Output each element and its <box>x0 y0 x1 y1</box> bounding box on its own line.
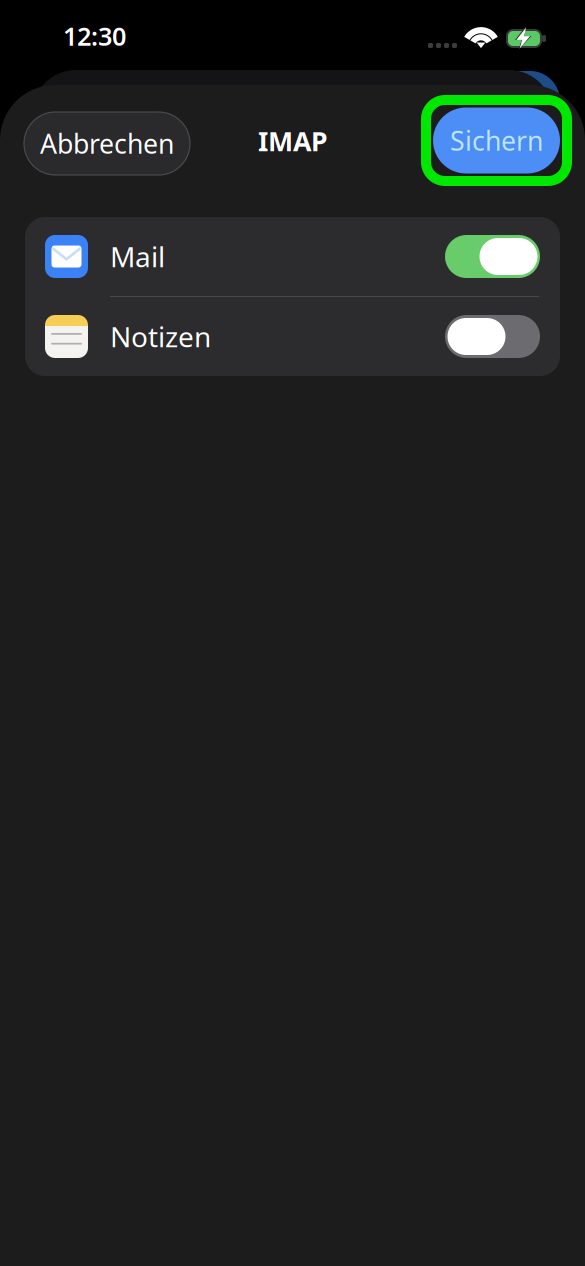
button[interactable]: Sichern <box>421 95 572 186</box>
button[interactable]: Aus <box>445 315 540 358</box>
button[interactable]: Notizen <box>25 297 560 376</box>
staticText: Mail <box>110 238 165 275</box>
button[interactable]: Mail <box>25 217 560 296</box>
staticText: IMAP <box>258 123 328 159</box>
button[interactable]: Ein <box>445 235 540 278</box>
staticText: 12:30 <box>63 19 126 53</box>
staticText: Notizen <box>110 318 211 355</box>
button[interactable]: Abbrechen <box>24 112 190 175</box>
staticText: Sichern <box>450 123 543 158</box>
staticText: Abbrechen <box>40 126 174 161</box>
